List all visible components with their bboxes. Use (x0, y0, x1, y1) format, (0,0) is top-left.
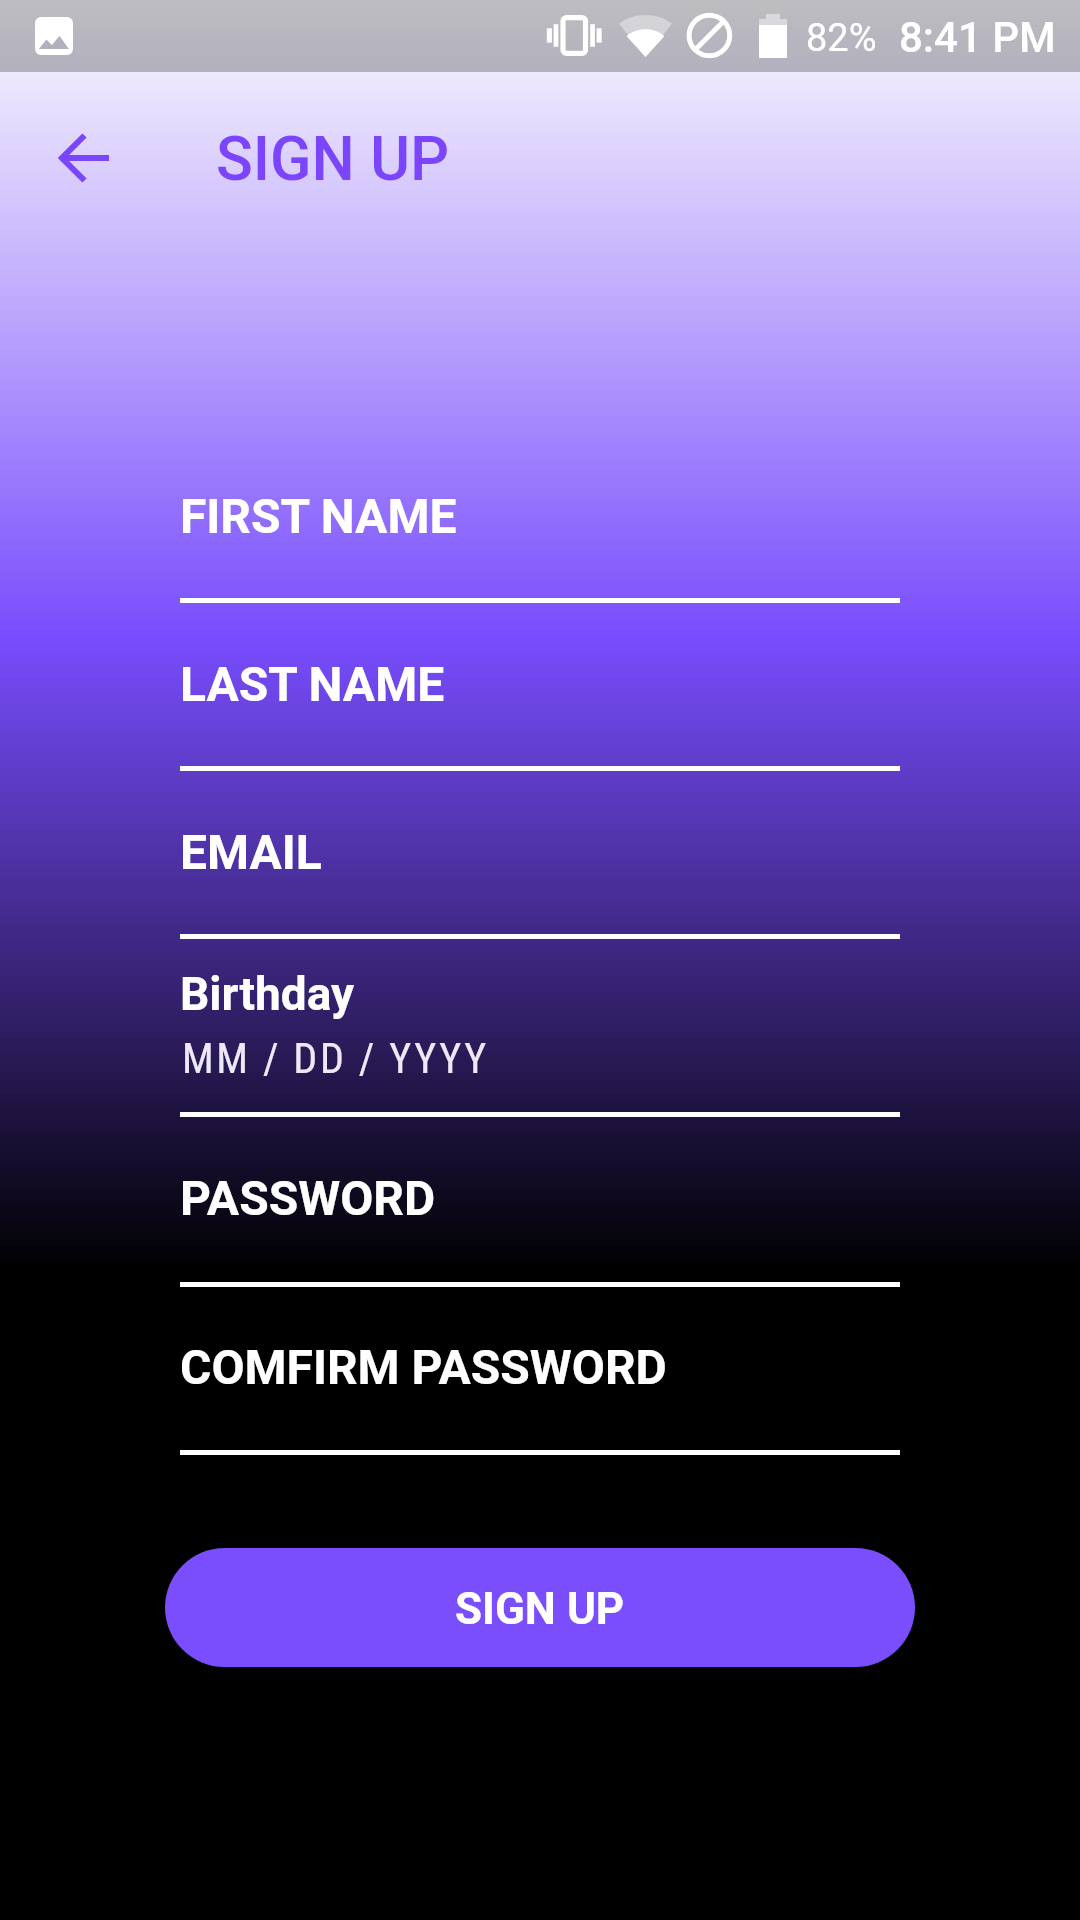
staticText: 8:41 PM (899, 13, 1056, 62)
button[interactable]: FIRST NAME (180, 480, 900, 605)
staticText: EMAIL (180, 824, 322, 880)
staticText: SIGN UP (455, 1583, 625, 1635)
button[interactable]: LAST NAME (180, 648, 900, 773)
staticText: 82% (806, 16, 877, 61)
staticText: MM / DD / YYYY (182, 1034, 489, 1083)
button[interactable]: COMFIRM PASSWORD (180, 1332, 900, 1457)
staticText: Birthday (180, 967, 355, 1021)
staticText: SIGN UP (216, 123, 449, 194)
button[interactable]: PASSWORD (180, 1164, 900, 1289)
staticText: LAST NAME (180, 656, 445, 712)
staticText: PASSWORD (180, 1170, 436, 1226)
button[interactable]: SIGN UP (165, 1548, 915, 1667)
button[interactable]: Back (22, 96, 146, 220)
staticText: FIRST NAME (180, 488, 457, 544)
button[interactable]: Birthday (180, 964, 900, 1119)
staticText: COMFIRM PASSWORD (180, 1339, 667, 1395)
button[interactable]: EMAIL (180, 816, 900, 941)
